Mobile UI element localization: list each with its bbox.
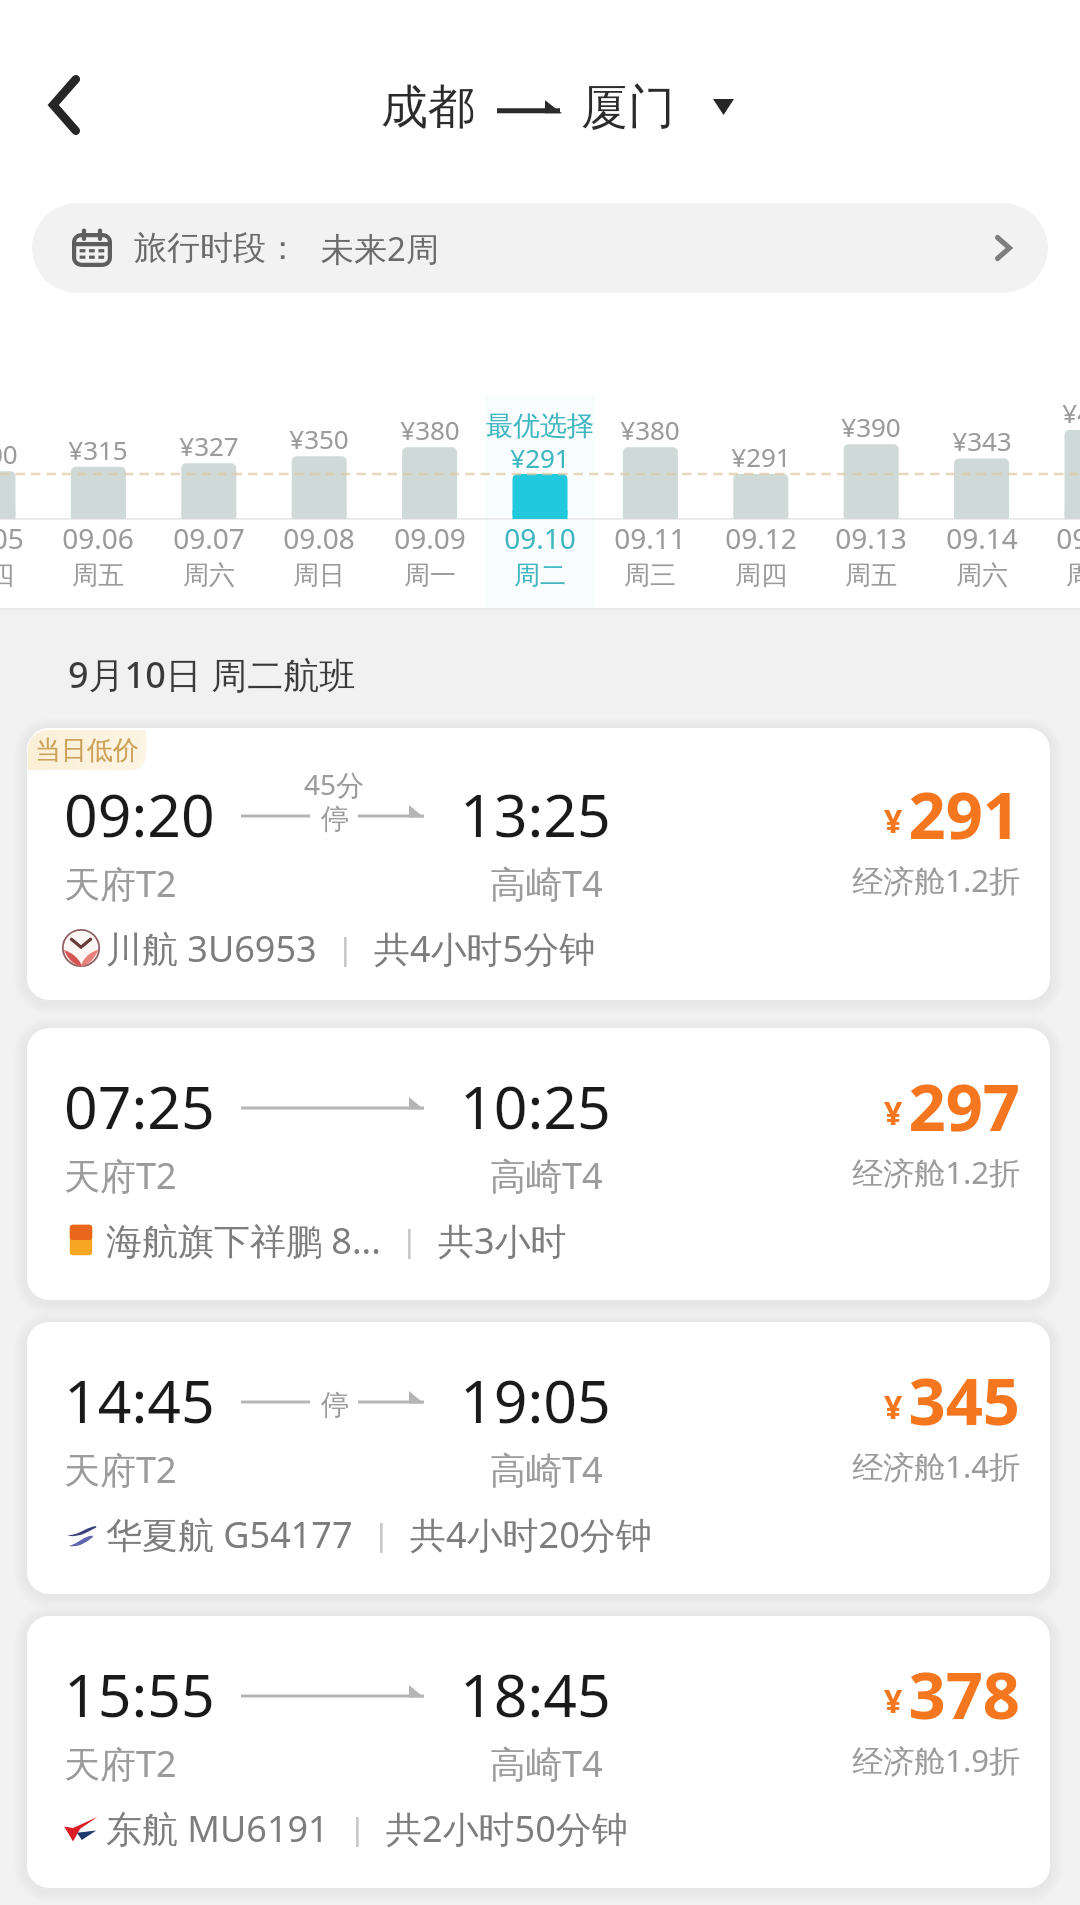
staticText: 高崎T4 <box>490 1151 603 1200</box>
staticText: 378 <box>810 1650 1020 1739</box>
staticText: 09.05 <box>0 519 88 557</box>
button[interactable]: 14:45 <box>27 1322 1050 1594</box>
staticText: | <box>401 1220 418 1261</box>
staticText: 经济舱1.2折 <box>770 1151 1020 1193</box>
staticText: ¥380 <box>550 412 750 447</box>
staticText: 周二 <box>440 559 640 592</box>
staticText: 高崎T4 <box>490 1739 603 1788</box>
staticText: ¥300 <box>0 436 88 471</box>
staticText: 周五 <box>0 559 198 592</box>
staticText: 天府T2 <box>64 859 177 908</box>
button[interactable]: 15:55 <box>27 1616 1050 1888</box>
staticText: 09.12 <box>661 519 861 557</box>
staticText: | <box>337 928 354 969</box>
staticText: 15:55 <box>64 1654 215 1734</box>
staticText: 共2小时50分钟 <box>386 1804 628 1852</box>
staticText: 停 <box>305 1387 365 1422</box>
staticText: ¥ <box>884 1679 903 1723</box>
staticText: ¥343 <box>882 423 1080 458</box>
staticText: ¥438 <box>992 395 1080 430</box>
staticText: 华夏航 G54177 <box>106 1510 353 1558</box>
staticText: 厦门 <box>581 78 675 137</box>
staticText: 周日 <box>219 559 419 592</box>
staticText: 周六 <box>109 559 309 592</box>
staticText: 09.11 <box>550 519 750 557</box>
staticText: 高崎T4 <box>490 1445 603 1494</box>
staticText: ¥380 <box>330 412 530 447</box>
staticText: ¥ <box>884 1385 903 1429</box>
staticText: 19:05 <box>460 1360 611 1440</box>
staticText: 天府T2 <box>64 1151 177 1200</box>
staticText: 周一 <box>330 559 530 592</box>
staticText: ¥315 <box>0 432 198 467</box>
staticText: 经济舱1.4折 <box>770 1445 1020 1487</box>
staticText: 07:25 <box>64 1066 215 1146</box>
staticText: 14:45 <box>64 1360 215 1440</box>
staticText: 周日 <box>992 559 1080 592</box>
staticText: | <box>373 1514 390 1555</box>
staticText: 海航旗下祥鹏 8... <box>106 1216 381 1264</box>
staticText: 经济舱1.9折 <box>770 1739 1020 1781</box>
staticText: 周四 <box>661 559 861 592</box>
button[interactable]: Back <box>12 40 116 170</box>
staticText: | <box>349 1808 366 1849</box>
button[interactable]: 07:25 <box>27 1028 1050 1300</box>
staticText: 09.09 <box>330 519 530 557</box>
staticText: 周五 <box>771 559 971 592</box>
staticText: 345 <box>810 1356 1020 1445</box>
staticText: 周六 <box>882 559 1080 592</box>
button[interactable]: 成都 <box>381 72 734 142</box>
staticText: 未来2周 <box>321 226 439 271</box>
staticText: 周三 <box>550 559 750 592</box>
staticText: 高崎T4 <box>490 859 603 908</box>
staticText: 东航 MU6191 <box>106 1804 329 1852</box>
staticText: ¥327 <box>109 428 309 463</box>
staticText: 10:25 <box>460 1066 611 1146</box>
button[interactable]: 旅行时段： <box>32 203 1048 293</box>
staticText: 18:45 <box>460 1654 611 1734</box>
staticText: ¥291 <box>440 440 640 475</box>
staticText: 共3小时 <box>438 1216 567 1264</box>
staticText: 291 <box>810 770 1020 859</box>
staticText: 当日低价 <box>35 734 139 767</box>
staticText: 09.15 <box>992 519 1080 557</box>
staticText: 09.14 <box>882 519 1080 557</box>
staticText: 成都 <box>381 78 475 137</box>
staticText: 09.08 <box>219 519 419 557</box>
staticText: 297 <box>810 1062 1020 1151</box>
staticText: 共4小时20分钟 <box>410 1510 652 1558</box>
staticText: 09:20 <box>64 774 215 854</box>
staticText: 45分 <box>264 765 404 803</box>
staticText: 最优选择 <box>440 409 640 443</box>
staticText: ¥ <box>884 799 903 843</box>
staticText: 9月10日 周二航班 <box>68 650 356 699</box>
staticText: 09.06 <box>0 519 198 557</box>
staticText: 天府T2 <box>64 1739 177 1788</box>
staticText: 川航 3U6953 <box>106 924 317 972</box>
staticText: 经济舱1.2折 <box>770 859 1020 901</box>
staticText: 13:25 <box>460 774 611 854</box>
button[interactable]: 当日低价 <box>27 728 1050 1000</box>
staticText: 周四 <box>0 559 88 592</box>
staticText: 天府T2 <box>64 1445 177 1494</box>
staticText: 停 <box>305 801 365 836</box>
staticText: ¥390 <box>771 409 971 444</box>
staticText: 09.07 <box>109 519 309 557</box>
staticText: 旅行时段： <box>134 227 299 269</box>
staticText: 09.10 <box>440 519 640 557</box>
staticText: ¥350 <box>219 421 419 456</box>
staticText: 09.13 <box>771 519 971 557</box>
staticText: ¥ <box>884 1091 903 1135</box>
staticText: ¥291 <box>661 439 861 474</box>
staticText: 共4小时5分钟 <box>374 924 596 972</box>
